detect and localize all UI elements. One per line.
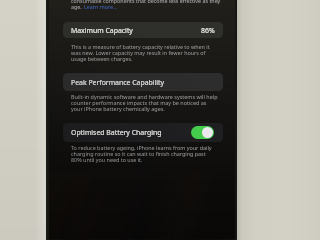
staticText: Peak Performance Capability bbox=[71, 78, 165, 87]
button[interactable]: Maximum Capacity bbox=[63, 22, 223, 38]
staticText: Built-in dynamic software and hardware s… bbox=[71, 93, 218, 113]
staticText: To reduce battery ageing, iPhone learns … bbox=[71, 144, 212, 164]
staticText: Maximum Capacity bbox=[71, 26, 133, 35]
staticText: 86% bbox=[201, 26, 215, 35]
staticText: consumable components that become less e… bbox=[71, 0, 221, 4]
button[interactable]: Learn more... bbox=[84, 3, 118, 10]
button[interactable]: Optimised Battery Charging toggle bbox=[191, 126, 214, 139]
staticText: This is a measure of battery capacity re… bbox=[71, 43, 210, 62]
button[interactable]: Peak Performance Capability bbox=[63, 73, 223, 91]
button[interactable]: Optimised Battery Charging bbox=[63, 123, 223, 142]
staticText: Optimised Battery Charging bbox=[71, 128, 162, 137]
staticText: age. bbox=[71, 3, 84, 10]
